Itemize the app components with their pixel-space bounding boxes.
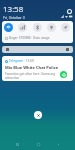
staticText: Fri, October 3 bbox=[3, 15, 25, 20]
button[interactable]: Settings bbox=[67, 9, 72, 14]
button[interactable]: WhatsApp bbox=[60, 71, 67, 78]
button[interactable]: Clear all notifications bbox=[34, 111, 42, 119]
staticText: Favorites get alive here. Samsung attrac… bbox=[5, 72, 70, 80]
button[interactable]: Flashlight bbox=[47, 23, 56, 32]
button[interactable]: Mobile data bbox=[18, 23, 27, 32]
button[interactable]: Wi-Fi bbox=[4, 23, 13, 32]
staticText: Mix Blue White Chat Police bbox=[5, 65, 59, 70]
staticText: 13:58 bbox=[3, 3, 24, 14]
staticText: Telegram bbox=[9, 59, 23, 63]
button[interactable]: Back bbox=[55, 141, 61, 147]
button[interactable]: Auto brightness bbox=[2, 46, 73, 53]
button[interactable]: Telegram bbox=[2, 56, 73, 81]
button[interactable]: Bluetooth bbox=[33, 23, 42, 32]
button[interactable]: Recents bbox=[14, 141, 20, 147]
button[interactable]: Home bbox=[35, 141, 41, 147]
button[interactable]: Auto brightness bbox=[66, 48, 69, 51]
staticText: Buger 5700MB · Data usage bbox=[9, 36, 50, 40]
staticText: · 13:50 bbox=[24, 59, 34, 63]
button[interactable]: Airplane mode bbox=[61, 23, 70, 32]
